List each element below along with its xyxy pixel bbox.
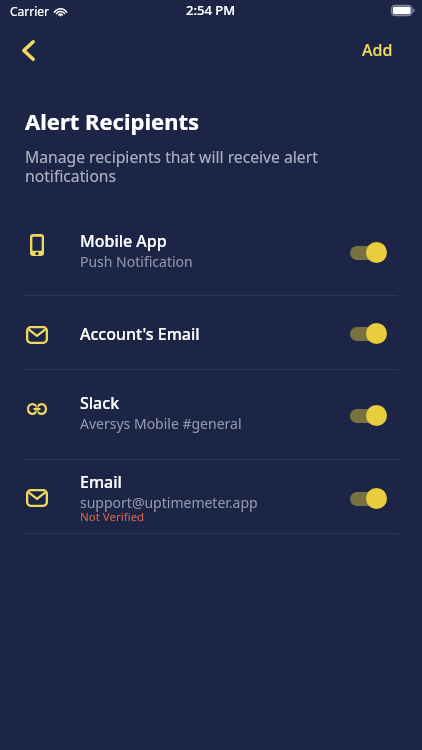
button[interactable]: Add — [354, 33, 401, 67]
button[interactable]: Account's Email — [0, 296, 422, 369]
button[interactable]: Email — [0, 460, 422, 533]
staticText: Slack — [80, 392, 120, 414]
button[interactable]: Toggle — [350, 488, 387, 509]
staticText: Push Notification — [80, 252, 193, 271]
staticText: Mobile App — [80, 230, 167, 252]
button[interactable]: Slack — [0, 370, 422, 459]
button[interactable]: Toggle — [350, 405, 387, 426]
staticText: Alert Recipients — [25, 106, 200, 136]
staticText: Email — [80, 471, 122, 493]
button[interactable]: Mobile App — [0, 203, 422, 295]
staticText: support@uptimemeter.app — [80, 493, 258, 512]
staticText: Carrier — [10, 3, 50, 19]
staticText: Account's Email — [80, 323, 200, 345]
button[interactable]: Back — [11, 33, 46, 68]
staticText: Aversys Mobile #general — [80, 414, 242, 433]
staticText: 2:54 PM — [186, 1, 236, 19]
staticText: Manage recipients that will receive aler… — [25, 146, 337, 186]
staticText: Add — [362, 39, 393, 61]
button[interactable]: Toggle — [350, 323, 387, 344]
staticText: Not Verified — [80, 509, 145, 525]
button[interactable]: Toggle — [350, 242, 387, 263]
